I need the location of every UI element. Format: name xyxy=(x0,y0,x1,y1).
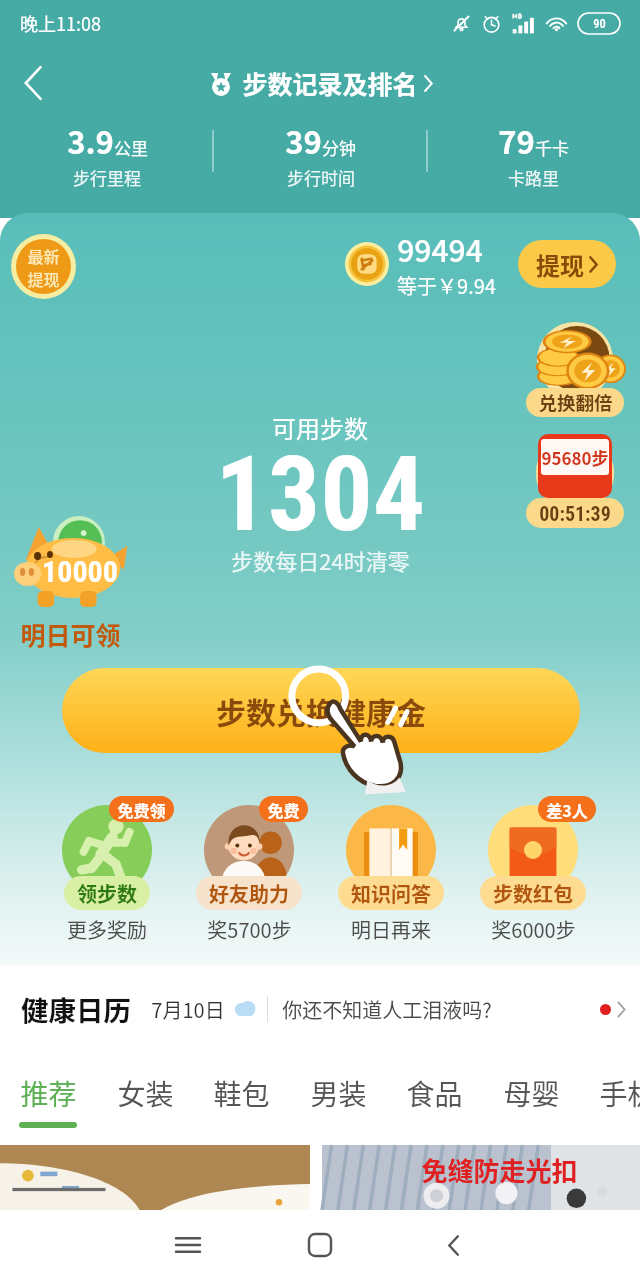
staticText: 步数兑换健康金 xyxy=(216,689,426,732)
staticText: 95680步 xyxy=(541,445,609,470)
button[interactable]: Recent apps xyxy=(153,1210,223,1280)
button[interactable]: Back xyxy=(8,60,58,106)
staticText: 00:51:39 xyxy=(539,502,611,525)
staticText: 更多奖励 xyxy=(67,915,147,944)
staticText: 好友助力 xyxy=(209,879,289,908)
staticText: 晚上11:08 xyxy=(20,10,101,36)
button[interactable]: 好友助力 xyxy=(178,798,320,948)
staticText: 等于￥9.94 xyxy=(397,271,496,300)
button[interactable]: 食品 xyxy=(386,1043,482,1145)
staticText: 奖6000步 xyxy=(491,915,576,944)
button[interactable]: 最新 xyxy=(16,239,71,294)
staticText: 3.9 xyxy=(67,118,114,163)
staticText: 步数每日24时清零 xyxy=(231,544,410,576)
staticText: 步数记录及排名 xyxy=(242,65,418,101)
button[interactable]: 知识问答 xyxy=(320,798,462,948)
staticText: 手机 xyxy=(599,1073,640,1114)
button[interactable]: 健康日历 xyxy=(21,975,626,1043)
button[interactable]: 手机 xyxy=(579,1043,640,1145)
staticText: 母婴 xyxy=(503,1073,560,1114)
staticText: 步行时间 xyxy=(287,165,355,188)
staticText: 可用步数 xyxy=(272,410,368,445)
staticText: 领步数 xyxy=(77,879,137,908)
staticText: 提现 xyxy=(536,247,584,282)
staticText: 最新 xyxy=(27,244,60,267)
button[interactable]: 领步数 xyxy=(36,798,178,948)
button[interactable]: 79 xyxy=(427,118,640,188)
button[interactable]: 10000 xyxy=(6,512,136,652)
staticText: 知识问答 xyxy=(351,879,431,908)
staticText: 免费 xyxy=(267,798,300,821)
button[interactable]: 鞋包 xyxy=(193,1043,289,1145)
staticText: 千卡 xyxy=(535,135,569,160)
button[interactable]: Home xyxy=(285,1210,355,1280)
staticText: 免缝防走光扣 xyxy=(421,1151,578,1189)
staticText: 明日再来 xyxy=(351,915,431,944)
button[interactable]: 3.9 xyxy=(0,118,214,188)
staticText: 步行里程 xyxy=(73,165,141,188)
staticText: 健康日历 xyxy=(21,989,131,1029)
staticText: 39 xyxy=(285,118,322,163)
staticText: 提现 xyxy=(27,267,60,290)
staticText: 兑换翻倍 xyxy=(538,389,613,416)
staticText: 女装 xyxy=(117,1073,174,1114)
staticText: 奖5700步 xyxy=(207,915,292,944)
button[interactable]: 95680步 xyxy=(526,428,624,528)
button[interactable]: 步数记录及排名 xyxy=(207,65,433,101)
staticText: 推荐 xyxy=(20,1073,77,1114)
button[interactable]: 免缝防走光扣 xyxy=(322,1145,640,1210)
button[interactable]: 女装 xyxy=(97,1043,193,1145)
button[interactable]: Back xyxy=(418,1210,488,1280)
staticText: 79 xyxy=(498,118,535,163)
staticText: 你还不知道人工泪液吗? xyxy=(282,995,492,1024)
staticText: 免费领 xyxy=(117,798,166,821)
button[interactable]: 提现 xyxy=(518,240,616,288)
staticText: 90 xyxy=(593,16,606,31)
staticText: 男装 xyxy=(310,1073,367,1114)
staticText: 卡路里 xyxy=(508,165,559,188)
staticText: 分钟 xyxy=(322,135,356,160)
button[interactable]: 步数兑换健康金 xyxy=(62,668,580,753)
staticText: 公里 xyxy=(114,135,148,160)
staticText: 食品 xyxy=(406,1073,463,1114)
staticText: 差3人 xyxy=(546,798,588,821)
staticText: 7月10日 xyxy=(151,995,225,1024)
staticText: 99494 xyxy=(397,227,483,270)
button[interactable]: 男装 xyxy=(290,1043,386,1145)
button[interactable]: 兑换翻倍 xyxy=(526,326,624,423)
staticText: 鞋包 xyxy=(213,1073,270,1114)
button[interactable]: 步数红包 xyxy=(462,798,604,948)
staticText: 10000 xyxy=(42,554,118,589)
staticText: 明日可领 xyxy=(20,616,121,652)
staticText: 步数红包 xyxy=(493,879,573,908)
button[interactable] xyxy=(0,1145,310,1210)
button[interactable]: 39 xyxy=(214,118,427,188)
staticText: 1304 xyxy=(215,434,426,555)
button[interactable]: 推荐 xyxy=(0,1043,96,1145)
button[interactable]: 母婴 xyxy=(483,1043,579,1145)
